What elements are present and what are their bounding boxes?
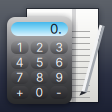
staticText: 4 xyxy=(16,55,24,70)
staticText: 6 xyxy=(55,55,62,70)
button[interactable]: 8 xyxy=(31,71,48,84)
button[interactable]: 0 xyxy=(31,86,48,99)
button[interactable]: 7 xyxy=(11,71,29,84)
staticText: 9 xyxy=(55,70,62,85)
staticText: 0 xyxy=(35,85,43,100)
button[interactable]: 1 xyxy=(11,41,29,54)
staticText: 0. xyxy=(50,21,62,37)
button[interactable]: 6 xyxy=(50,56,68,69)
staticText: 3 xyxy=(55,40,62,55)
button[interactable]: 9 xyxy=(50,71,68,84)
button[interactable]: + xyxy=(11,86,29,99)
button[interactable]: 2 xyxy=(31,41,48,54)
staticText: 2 xyxy=(36,40,43,55)
button[interactable]: 4 xyxy=(11,56,29,69)
staticText: 8 xyxy=(36,70,43,85)
button[interactable]: 5 xyxy=(31,56,48,69)
button[interactable]: - xyxy=(50,86,68,99)
staticText: 7 xyxy=(16,70,23,85)
staticText: 1 xyxy=(17,40,22,55)
button[interactable]: 3 xyxy=(50,41,68,54)
staticText: 5 xyxy=(36,55,43,70)
staticText: - xyxy=(56,85,62,100)
staticText: + xyxy=(16,85,24,100)
